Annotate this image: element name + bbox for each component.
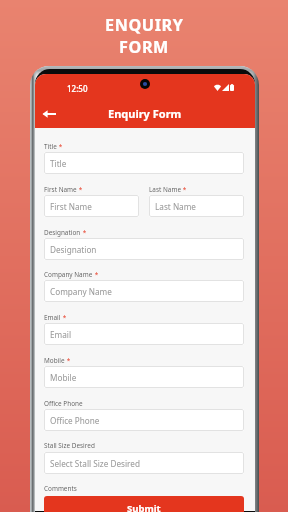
staticText: ENQUIRY [105, 14, 184, 36]
staticText: Select Stall Size Desired [50, 458, 140, 469]
button[interactable]: Select Stall Size Desired [44, 452, 244, 474]
staticText: FORM [119, 36, 169, 58]
staticText: * [93, 270, 99, 279]
staticText: Last Name [155, 201, 196, 212]
staticText: Designation [50, 244, 97, 255]
staticText: Company Name [50, 286, 112, 297]
staticText: Designation [44, 228, 81, 237]
staticText: Last Name [149, 185, 181, 194]
staticText: * [65, 356, 71, 365]
staticText: Email [50, 329, 72, 340]
button[interactable]: Office Phone [44, 409, 244, 431]
staticText: Mobile [44, 356, 65, 365]
button[interactable]: Back [38, 103, 60, 125]
staticText: 12:50 [67, 83, 88, 94]
button[interactable]: Title [44, 152, 244, 174]
button[interactable]: Last Name [149, 195, 244, 217]
staticText: Company Name [44, 270, 93, 279]
staticText: Email [44, 313, 61, 322]
button[interactable]: Designation [44, 238, 244, 260]
staticText: Title [50, 158, 67, 169]
staticText: * [57, 142, 63, 151]
staticText: Office Phone [44, 399, 83, 408]
staticText: Title [44, 142, 57, 151]
staticText: Stall Size Desired [44, 441, 95, 450]
staticText: Enquiry Form [108, 106, 182, 121]
button[interactable]: Mobile [44, 366, 244, 388]
staticText: First Name [50, 201, 92, 212]
staticText: * [61, 313, 67, 322]
staticText: Mobile [50, 372, 77, 383]
staticText: Office Phone [50, 415, 100, 426]
staticText: * [81, 228, 87, 237]
button[interactable]: Submit [44, 496, 244, 512]
staticText: First Name [44, 185, 77, 194]
staticText: * [77, 185, 83, 194]
button[interactable]: Company Name [44, 280, 244, 302]
staticText: Comments [44, 484, 77, 493]
staticText: * [181, 185, 187, 194]
button[interactable]: First Name [44, 195, 139, 217]
staticText: Submit [127, 502, 161, 512]
button[interactable]: Email [44, 323, 244, 345]
